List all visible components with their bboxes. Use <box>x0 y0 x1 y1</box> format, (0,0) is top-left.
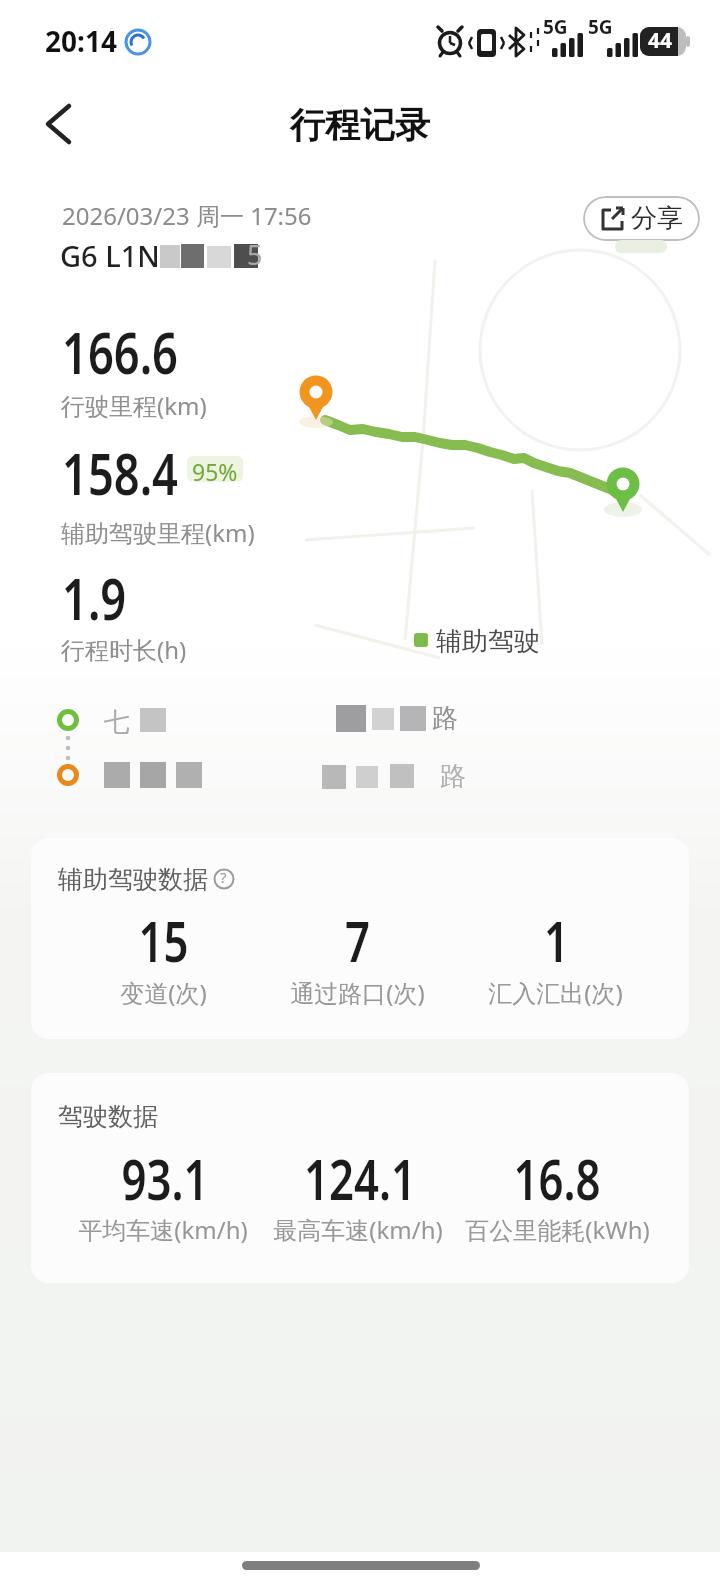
staticText: 最高车速(km/h) <box>273 1213 443 1246</box>
staticText: 16.8 <box>513 1140 601 1216</box>
staticText: 20:14 <box>45 22 117 60</box>
staticText: G6 L1N <box>60 236 160 275</box>
staticText: 辅助驾驶数据 <box>58 864 208 895</box>
staticText: 5G <box>543 14 568 40</box>
staticText: 辅助驾驶里程(km) <box>61 516 255 549</box>
staticText: 汇入汇出(次) <box>488 976 623 1009</box>
staticText: 158.4 <box>62 433 178 512</box>
staticText: 分享 <box>631 202 683 235</box>
button[interactable]: 分享 <box>583 196 700 241</box>
button[interactable] <box>30 95 86 151</box>
staticText: 路 <box>432 702 458 735</box>
staticText: 七 <box>104 706 130 739</box>
staticText: 行程时长(h) <box>61 633 187 666</box>
staticText: 5G <box>588 14 613 40</box>
button[interactable]: 驾驶数据 <box>31 1073 689 1283</box>
staticText: 百公里能耗(kWh) <box>465 1213 650 1246</box>
button[interactable]: 辅助驾驶数据 <box>31 838 689 1039</box>
staticText: 路 <box>440 760 466 793</box>
staticText: 行驶里程(km) <box>61 389 207 422</box>
staticText: 93.1 <box>121 1140 209 1216</box>
staticText: ? <box>220 867 227 887</box>
staticText: 辅助驾驶 <box>436 625 540 658</box>
staticText: 通过路口(次) <box>290 976 425 1009</box>
staticText: 7 <box>345 902 370 978</box>
staticText: 5 <box>247 236 263 273</box>
staticText: 95% <box>192 456 238 482</box>
staticText: 166.6 <box>62 312 178 391</box>
staticText: 平均车速(km/h) <box>78 1213 248 1246</box>
staticText: 15 <box>138 902 189 978</box>
staticText: 变道(次) <box>120 976 207 1009</box>
staticText: 1.9 <box>62 558 127 637</box>
staticText: 44 <box>648 26 673 55</box>
staticText: 124.1 <box>304 1140 416 1216</box>
staticText: 1 <box>544 902 569 978</box>
staticText: 驾驶数据 <box>58 1101 158 1132</box>
staticText: 2026/03/23 周一 17:56 <box>62 199 312 232</box>
staticText: 行程记录 <box>290 103 430 147</box>
